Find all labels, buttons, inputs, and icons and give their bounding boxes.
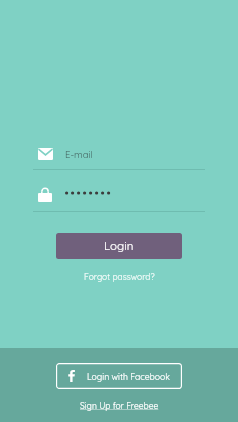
- staticText: Sign Up for Freebee: [80, 400, 159, 411]
- button[interactable]: Login with Facebook: [56, 363, 182, 389]
- staticText: Login: [104, 238, 134, 252]
- button[interactable]: Sign Up for Freebee: [56, 396, 182, 414]
- other: Password: [38, 187, 52, 202]
- staticText: Login with Facebook: [87, 371, 171, 382]
- button[interactable]: Login: [56, 233, 182, 259]
- button[interactable]: Forgot password?: [56, 265, 182, 287]
- staticText: E-mail: [65, 148, 93, 160]
- staticText: Forgot password?: [84, 271, 155, 282]
- other: Email: [38, 148, 53, 160]
